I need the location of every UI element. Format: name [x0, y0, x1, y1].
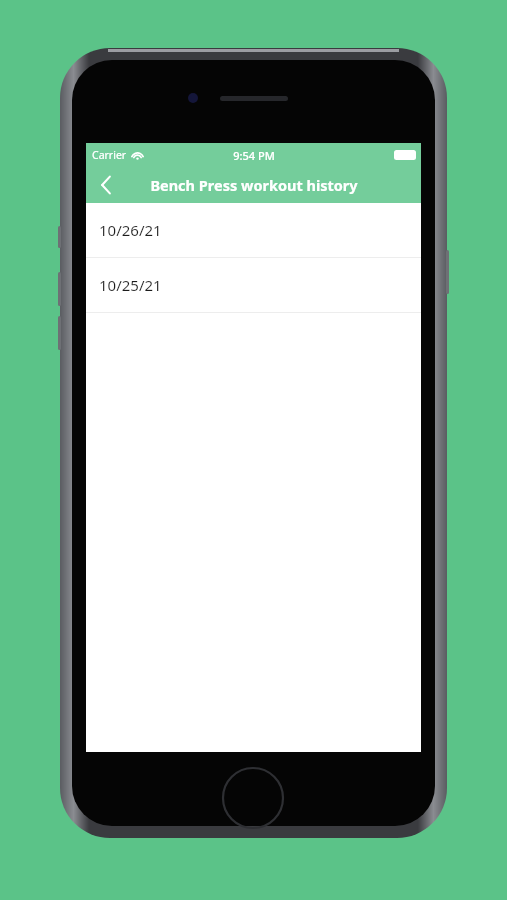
button[interactable]: Home — [220, 765, 286, 831]
staticText: 9:54 PM — [233, 148, 275, 163]
staticText: Carrier — [92, 148, 127, 162]
button[interactable]: 10/26/21 — [86, 203, 421, 258]
staticText: 10/26/21 — [99, 220, 162, 240]
staticText: 10/25/21 — [99, 275, 162, 295]
button[interactable]: Back — [86, 167, 126, 203]
staticText: Bench Press workout history — [150, 175, 358, 195]
button[interactable]: 10/25/21 — [86, 258, 421, 313]
